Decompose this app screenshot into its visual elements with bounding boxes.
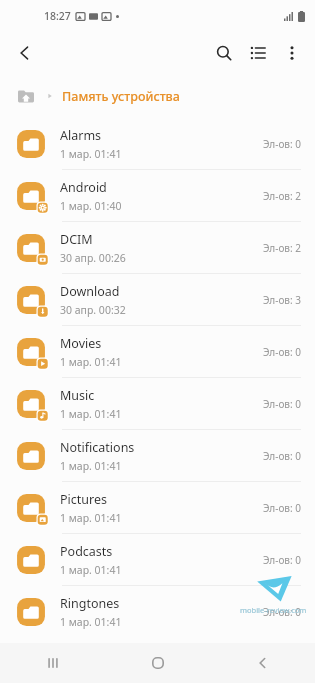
button[interactable]: Movies [0,326,315,378]
staticText: Эл-ов: 3 [262,293,301,307]
staticText: Эл-ов: 0 [262,449,301,463]
staticText: 1 мар. 01:41 [60,355,122,369]
staticText: Эл-ов: 2 [262,189,301,203]
staticText: 18:27 [44,9,71,23]
button[interactable]: Android [0,170,315,222]
staticText: 1 мар. 01:41 [60,511,122,525]
button[interactable]: Music [0,378,315,430]
staticText: Android [60,179,107,196]
staticText: Эл-ов: 0 [262,501,301,515]
staticText: 1 мар. 01:41 [60,459,122,473]
button[interactable]: Recent apps [0,643,105,683]
button[interactable]: Память устройства [62,88,180,105]
button[interactable]: Back [210,643,315,683]
staticText: DCIM [60,231,93,248]
staticText: Movies [60,335,102,352]
button[interactable]: More options [275,36,309,70]
staticText: 1 мар. 01:41 [60,563,122,577]
staticText: Эл-ов: 0 [262,397,301,411]
button[interactable]: Alarms [0,118,315,170]
staticText: Alarms [60,127,102,144]
button[interactable]: Home [105,643,210,683]
button[interactable]: Podcasts [0,534,315,586]
button[interactable]: Download [0,274,315,326]
staticText: Эл-ов: 0 [262,553,301,567]
staticText: Pictures [60,491,107,508]
button[interactable]: Back [8,36,42,70]
button[interactable]: Ringtones [0,586,315,637]
staticText: 1 мар. 01:40 [60,199,122,213]
staticText: Эл-ов: 0 [262,137,301,151]
button[interactable]: Pictures [0,482,315,534]
staticText: 1 мар. 01:41 [60,147,122,161]
staticText: 1 мар. 01:41 [60,615,122,629]
staticText: Notifications [60,439,135,456]
button[interactable]: Search [207,36,241,70]
button[interactable]: DCIM [0,222,315,274]
staticText: Download [60,283,120,300]
staticText: Podcasts [60,543,113,560]
staticText: Music [60,387,95,404]
staticText: Эл-ов: 0 [262,345,301,359]
staticText: 30 апр. 00:26 [60,251,126,265]
staticText: 1 мар. 01:41 [60,407,122,421]
staticText: 30 апр. 00:32 [60,303,126,317]
staticText: Память устройства [62,88,180,105]
staticText: Эл-ов: 0 [262,605,301,619]
staticText: Эл-ов: 2 [262,241,301,255]
staticText: Ringtones [60,595,120,612]
button[interactable]: View as list [241,36,275,70]
button[interactable]: Notifications [0,430,315,482]
staticText: mobile-review.com [240,605,307,615]
